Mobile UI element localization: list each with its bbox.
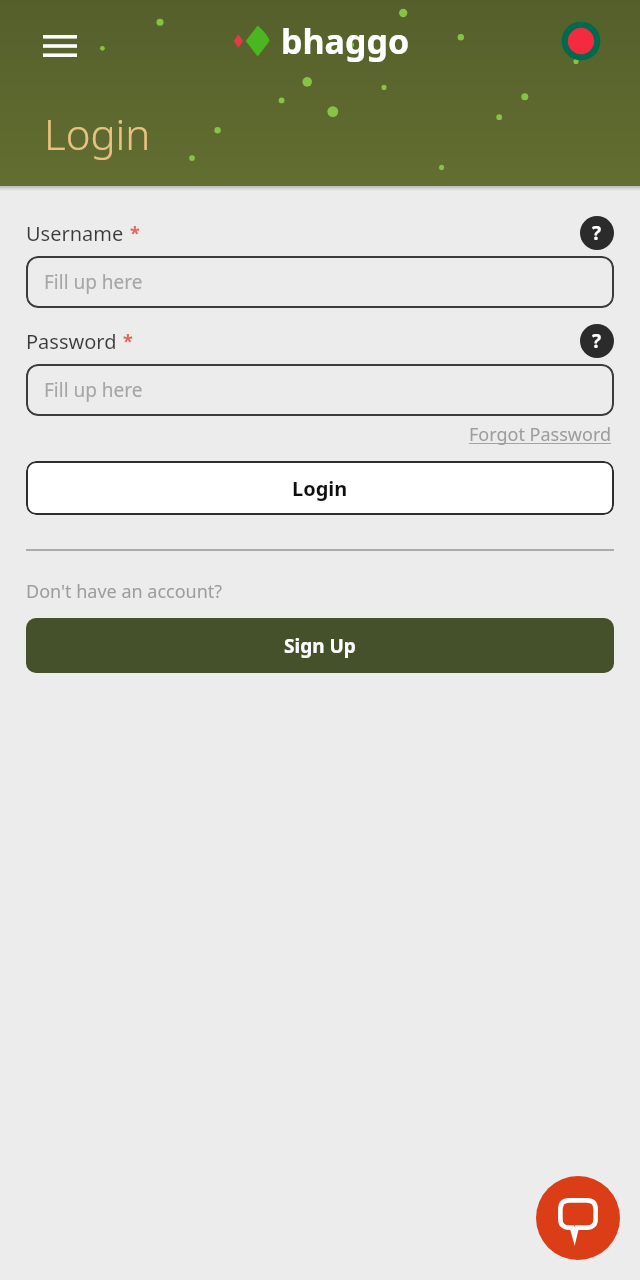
staticText: * (130, 221, 140, 246)
staticText: Fill up here (44, 269, 143, 295)
staticText: Forgot Password (469, 422, 612, 447)
button[interactable]: Open chat support (536, 1176, 620, 1260)
staticText: Username (26, 220, 124, 247)
staticText: * (123, 329, 133, 354)
button[interactable]: Language: Bangladesh (558, 18, 604, 64)
staticText: Login (292, 475, 348, 502)
staticText: Password (26, 328, 117, 355)
staticText: Sign Up (284, 633, 356, 659)
button[interactable]: Help about Username (580, 216, 614, 250)
button[interactable]: Sign Up (26, 618, 614, 673)
staticText: bhaggo (281, 18, 410, 64)
staticText: ? (592, 220, 602, 246)
button[interactable]: Fill up here (26, 256, 614, 308)
staticText: Fill up here (44, 377, 143, 403)
staticText: Login (44, 105, 151, 162)
staticText: ? (592, 328, 602, 354)
button[interactable]: Forgot Password (467, 416, 614, 453)
button[interactable]: Help about Password (580, 324, 614, 358)
staticText: Don't have an account? (26, 579, 223, 604)
button[interactable]: Fill up here (26, 364, 614, 416)
button[interactable]: Login (26, 461, 614, 515)
button[interactable]: Menu (34, 20, 86, 72)
